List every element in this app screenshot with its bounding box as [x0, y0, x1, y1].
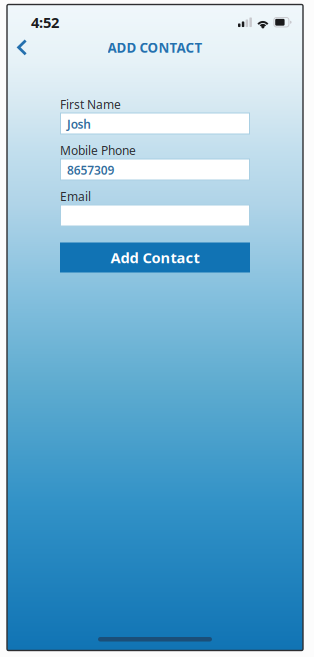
staticText: Josh	[67, 116, 91, 132]
staticText: Add Contact	[110, 248, 199, 267]
staticText: ADD CONTACT	[107, 39, 202, 56]
button[interactable]: Add Contact	[60, 242, 250, 272]
staticText: Mobile Phone	[60, 142, 136, 158]
staticText: Email	[60, 188, 91, 204]
staticText: First Name	[60, 96, 121, 112]
staticText: 4:52	[31, 12, 59, 32]
button[interactable]: Back	[7, 34, 39, 60]
staticText: 8657309	[67, 162, 114, 178]
